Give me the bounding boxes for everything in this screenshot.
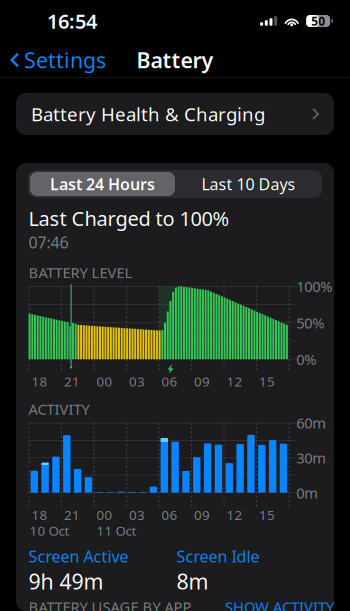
staticText: 00 [97, 506, 113, 524]
staticText: 07:46 [29, 232, 69, 253]
staticText: 100% [296, 276, 332, 296]
staticText: BATTERY LEVEL [29, 263, 133, 282]
staticText: 03 [129, 372, 145, 390]
button[interactable]: Settings [0, 40, 106, 80]
staticText: 21 [64, 506, 80, 524]
staticText: 30m [296, 448, 326, 467]
button[interactable]: Last 24 Hours [28, 170, 175, 198]
staticText: Last 10 Days [201, 173, 295, 195]
staticText: 21 [64, 372, 80, 390]
staticText: Screen Active [29, 546, 129, 567]
staticText: 15 [259, 506, 275, 524]
staticText: 09 [194, 372, 210, 390]
staticText: 09 [194, 506, 210, 524]
staticText: 50 [311, 13, 325, 29]
staticText: Screen Idle [177, 546, 260, 567]
button[interactable]: Battery Health & Charging [16, 93, 334, 135]
staticText: Battery Health & Charging [31, 102, 265, 126]
staticText: 06 [162, 372, 178, 390]
staticText: 18 [32, 506, 48, 524]
staticText: 50% [296, 313, 324, 332]
button[interactable]: SHOW ACTIVITY [225, 597, 334, 611]
staticText: 06 [162, 506, 178, 524]
staticText: 0% [296, 349, 316, 369]
staticText: 12 [227, 372, 243, 390]
staticText: 0m [296, 483, 318, 502]
staticText: 03 [129, 506, 145, 524]
staticText: 15 [259, 372, 275, 390]
staticText: 8m [177, 567, 209, 595]
staticText: Battery [136, 46, 213, 74]
staticText: 60m [296, 413, 326, 432]
staticText: 9h 49m [29, 567, 104, 595]
staticText: BATTERY USAGE BY APP [29, 597, 192, 611]
staticText: 10 Oct [30, 522, 70, 539]
staticText: 12 [227, 506, 243, 524]
staticText: ACTIVITY [29, 399, 90, 419]
button[interactable]: Last 10 Days [175, 170, 322, 198]
staticText: 18 [32, 372, 48, 390]
staticText: Last Charged to 100% [29, 205, 230, 232]
staticText: 11 Oct [97, 522, 137, 539]
staticText: Last 24 Hours [50, 173, 155, 195]
staticText: 16:54 [47, 8, 97, 34]
staticText: SHOW ACTIVITY [225, 597, 334, 611]
staticText: 00 [97, 372, 113, 390]
staticText: Settings [24, 46, 106, 74]
